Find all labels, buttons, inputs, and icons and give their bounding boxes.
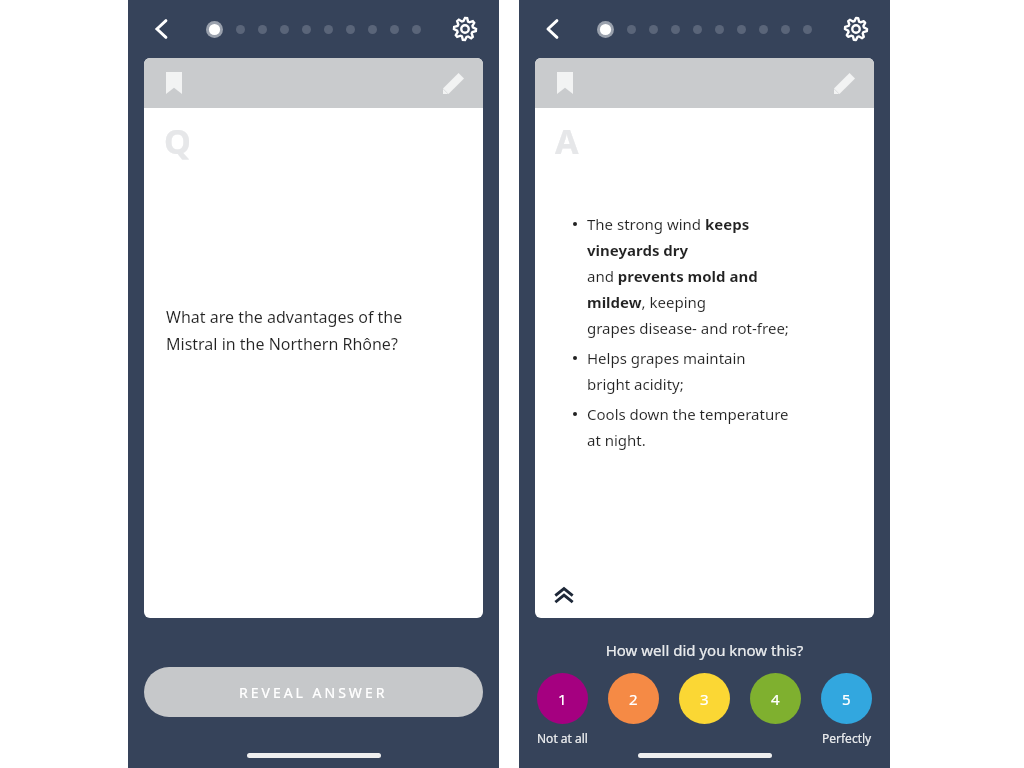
- button[interactable]: Collapse: [547, 578, 581, 612]
- button[interactable]: Settings: [445, 9, 485, 49]
- staticText: Perfectly: [822, 730, 872, 746]
- button[interactable]: 3: [679, 673, 730, 724]
- button[interactable]: 5: [821, 673, 872, 724]
- staticText: 2: [629, 689, 638, 709]
- button[interactable]: 2: [608, 673, 659, 724]
- staticText: How well did you know this?: [519, 640, 890, 660]
- staticText: 1: [558, 689, 567, 709]
- staticText: What are the advantages of the Mistral i…: [166, 306, 403, 355]
- button[interactable]: REVEAL ANSWER: [144, 667, 483, 717]
- staticText: Not at all: [537, 730, 588, 746]
- staticText: Cools down the temperature at night.: [587, 404, 789, 451]
- button[interactable]: 1: [537, 673, 588, 724]
- button[interactable]: Edit: [826, 65, 862, 101]
- staticText: 5: [842, 689, 851, 709]
- button[interactable]: Edit: [435, 65, 471, 101]
- button[interactable]: Bookmark: [144, 58, 483, 618]
- staticText: A: [555, 118, 579, 164]
- staticText: The strong wind keeps vineyards dry and …: [587, 214, 789, 339]
- staticText: Q: [164, 118, 191, 164]
- button[interactable]: Settings: [836, 9, 876, 49]
- button[interactable]: Bookmark: [156, 65, 192, 101]
- staticText: REVEAL ANSWER: [239, 683, 388, 702]
- button[interactable]: Bookmark: [547, 65, 583, 101]
- button[interactable]: Back: [142, 9, 182, 49]
- button[interactable]: Back: [533, 9, 573, 49]
- staticText: Helps grapes maintain bright acidity;: [587, 348, 746, 395]
- button[interactable]: 4: [750, 673, 801, 724]
- button[interactable]: Bookmark: [535, 58, 874, 618]
- staticText: 4: [771, 689, 780, 709]
- staticText: 3: [700, 689, 709, 709]
